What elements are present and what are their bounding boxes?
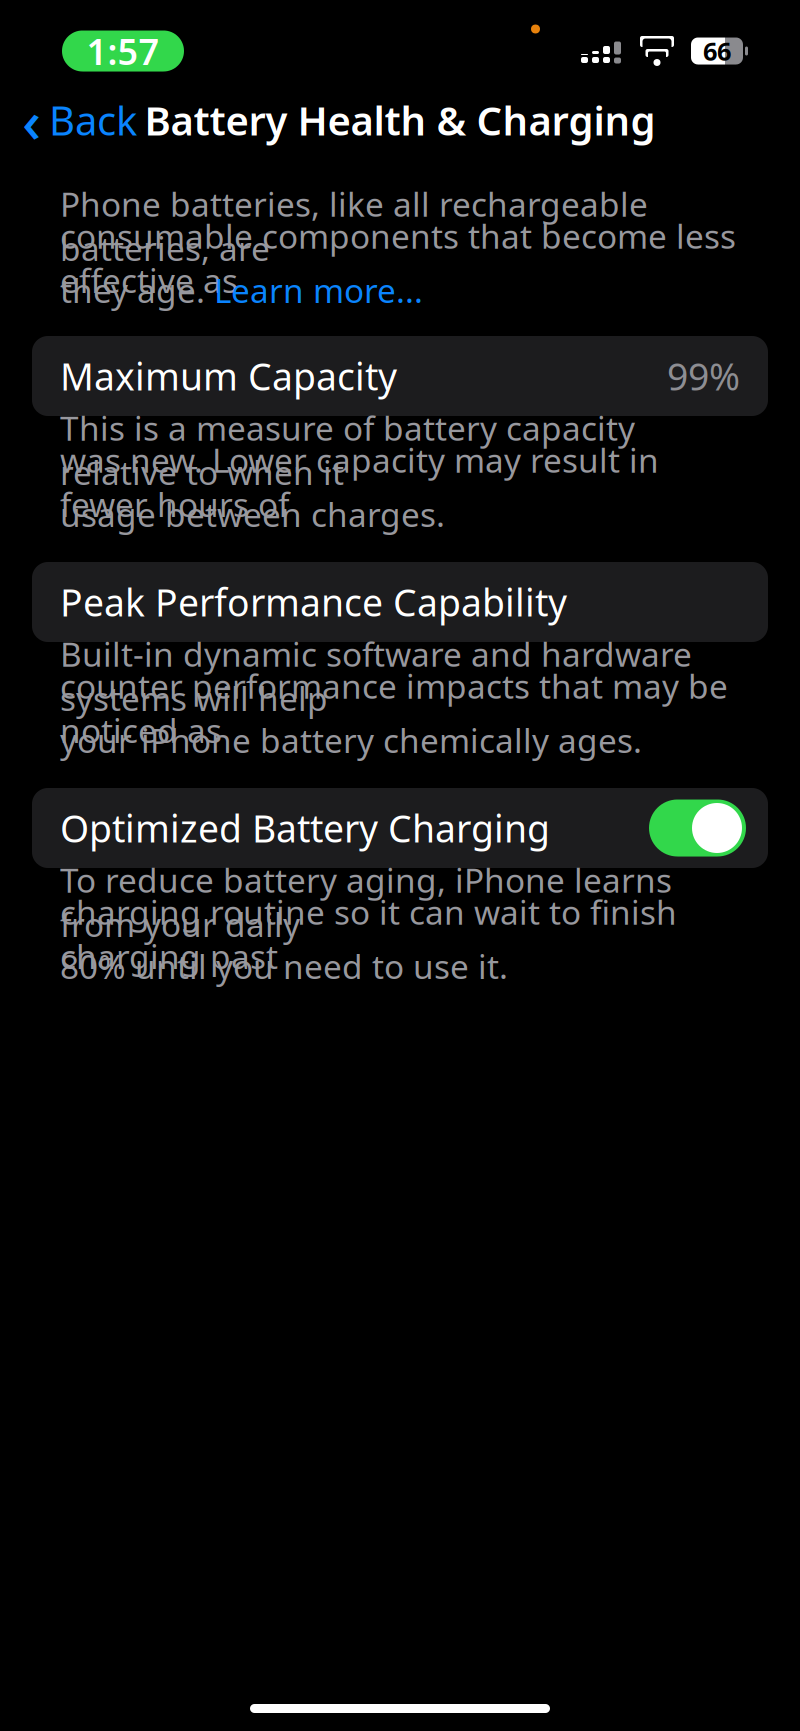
staticText: charging routine so it can wait to finis… <box>60 890 677 978</box>
staticText: ‹ <box>22 81 41 159</box>
staticText: Built-in dynamic software and hardware s… <box>60 632 692 720</box>
staticText: Phone batteries, like all rechargeable b… <box>60 182 648 270</box>
staticText: was new. Lower capacity may result in fe… <box>60 438 659 526</box>
staticText: Optimized Battery Charging <box>60 803 550 853</box>
staticText: To reduce battery aging, iPhone learns f… <box>60 858 672 946</box>
button[interactable]: Maximum Capacity <box>0 336 800 416</box>
staticText: your iPhone battery chemically ages. <box>60 718 642 762</box>
staticText: 1:57 <box>86 27 159 75</box>
staticText: they age. <box>60 268 214 312</box>
button[interactable]: Peak Performance Capability <box>0 562 800 642</box>
staticText: Maximum Capacity <box>60 351 397 401</box>
staticText: consumable components that become less e… <box>60 214 736 302</box>
staticText: Peak Performance Capability <box>60 577 567 627</box>
staticText: Battery Health & Charging <box>144 93 655 146</box>
staticText: usage between charges. <box>60 492 445 536</box>
button[interactable]: Optimized Battery Charging <box>0 788 800 868</box>
staticText: counter performance impacts that may be … <box>60 664 728 752</box>
staticText: 99% <box>667 351 740 401</box>
staticText: 66 <box>703 34 731 68</box>
staticText: 80% until you need to use it. <box>60 944 508 988</box>
staticText: This is a measure of battery capacity re… <box>60 406 635 494</box>
button[interactable]: ‹ <box>10 75 149 165</box>
staticText: Back <box>49 93 137 146</box>
staticText: Learn more... <box>214 268 423 312</box>
